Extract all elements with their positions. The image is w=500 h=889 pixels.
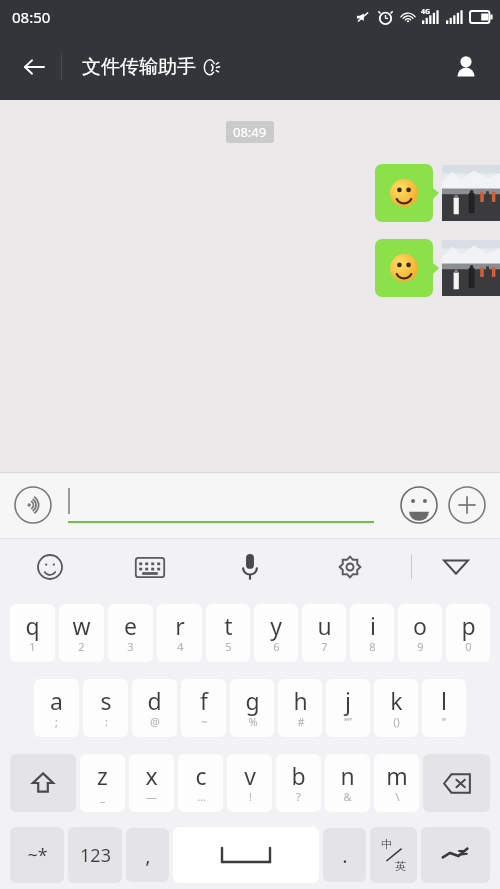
staticText: ? bbox=[296, 789, 301, 804]
button[interactable]: n bbox=[325, 754, 370, 812]
button[interactable] bbox=[68, 482, 388, 528]
button[interactable]: y bbox=[254, 604, 298, 662]
staticText: … bbox=[197, 789, 206, 804]
staticText: e bbox=[124, 610, 137, 641]
staticText: & bbox=[343, 789, 352, 804]
staticText: l bbox=[441, 685, 447, 716]
staticText: 3 bbox=[127, 639, 134, 654]
staticText: ~* bbox=[27, 843, 48, 868]
staticText: o bbox=[413, 610, 427, 641]
button[interactable]: Keyboard settings bbox=[328, 545, 372, 589]
button[interactable]: Enter bbox=[421, 827, 490, 883]
button[interactable]: Switch language bbox=[370, 827, 417, 883]
button[interactable]: w bbox=[59, 604, 104, 662]
staticText: “” bbox=[344, 714, 352, 729]
staticText: 4G bbox=[421, 7, 431, 17]
button[interactable]: l bbox=[422, 679, 466, 737]
button[interactable]: More options bbox=[448, 486, 486, 524]
button[interactable]: x bbox=[129, 754, 174, 812]
button[interactable]: Voice input bbox=[14, 486, 52, 524]
staticText: d bbox=[147, 685, 162, 716]
staticText: _ bbox=[100, 789, 105, 804]
button[interactable]: m bbox=[374, 754, 419, 812]
staticText: () bbox=[393, 714, 400, 729]
staticText: w bbox=[72, 610, 91, 641]
staticText: ~ bbox=[201, 714, 208, 729]
button[interactable]: g bbox=[230, 679, 274, 737]
button[interactable]: , bbox=[126, 828, 169, 882]
staticText: 123 bbox=[80, 843, 111, 868]
button[interactable] bbox=[375, 239, 439, 297]
button[interactable]: o bbox=[398, 604, 442, 662]
button[interactable]: Emoji bbox=[400, 486, 438, 524]
button[interactable] bbox=[442, 165, 500, 221]
staticText: 6 bbox=[273, 639, 280, 654]
staticText: 0 bbox=[465, 639, 472, 654]
button[interactable]: s bbox=[83, 679, 128, 737]
button[interactable]: h bbox=[278, 679, 322, 737]
button[interactable] bbox=[442, 240, 500, 296]
button[interactable]: r bbox=[157, 604, 202, 662]
button[interactable]: e bbox=[108, 604, 153, 662]
staticText: u bbox=[317, 610, 332, 641]
staticText: 08:50 bbox=[12, 7, 51, 27]
staticText: \ bbox=[395, 789, 400, 804]
button[interactable]: ~* bbox=[10, 827, 64, 883]
staticText: 2 bbox=[78, 639, 85, 654]
button[interactable]: a bbox=[34, 679, 79, 737]
staticText: : bbox=[105, 714, 108, 729]
staticText: ‘’ bbox=[442, 714, 446, 729]
staticText: r bbox=[175, 610, 185, 641]
button[interactable]: v bbox=[227, 754, 272, 812]
staticText: b bbox=[291, 760, 306, 791]
staticText: z bbox=[97, 760, 108, 791]
button[interactable]: t bbox=[206, 604, 250, 662]
staticText: 5 bbox=[225, 639, 232, 654]
button[interactable]: q bbox=[10, 604, 55, 662]
button[interactable]: k bbox=[374, 679, 418, 737]
staticText: k bbox=[390, 685, 403, 716]
staticText: p bbox=[461, 610, 476, 641]
button[interactable]: . bbox=[323, 828, 366, 882]
staticText: t bbox=[224, 610, 233, 641]
button[interactable]: Contact profile bbox=[444, 45, 488, 89]
staticText: 08:49 bbox=[233, 123, 267, 141]
button[interactable]: Backspace bbox=[423, 754, 490, 812]
staticText: % bbox=[248, 714, 258, 729]
button[interactable]: Back bbox=[14, 47, 54, 87]
staticText: 9 bbox=[417, 639, 424, 654]
staticText: 文件传输助手 bbox=[82, 55, 196, 79]
button[interactable]: z bbox=[80, 754, 125, 812]
button[interactable]: 123 bbox=[68, 827, 122, 883]
button[interactable]: Hide keyboard bbox=[434, 545, 478, 589]
staticText: n bbox=[340, 760, 355, 791]
button[interactable]: u bbox=[302, 604, 346, 662]
staticText: a bbox=[50, 685, 63, 716]
staticText: i bbox=[370, 610, 376, 641]
button[interactable]: Voice typing bbox=[228, 545, 272, 589]
staticText: — bbox=[146, 789, 157, 804]
button[interactable]: p bbox=[446, 604, 490, 662]
button[interactable]: Space bbox=[173, 827, 319, 883]
button[interactable]: c bbox=[178, 754, 223, 812]
button[interactable]: Shift bbox=[10, 754, 76, 812]
button[interactable]: j bbox=[326, 679, 370, 737]
staticText: ; bbox=[55, 714, 58, 729]
staticText: 1 bbox=[29, 639, 36, 654]
button[interactable]: f bbox=[181, 679, 226, 737]
button[interactable]: Keyboard layout bbox=[128, 545, 172, 589]
staticText: , bbox=[145, 842, 151, 869]
staticText: h bbox=[293, 685, 308, 716]
button[interactable]: b bbox=[276, 754, 321, 812]
button[interactable] bbox=[375, 164, 439, 222]
staticText: 7 bbox=[321, 639, 328, 654]
staticText: x bbox=[145, 760, 158, 791]
staticText: ! bbox=[249, 789, 252, 804]
staticText: y bbox=[270, 610, 282, 641]
button[interactable]: d bbox=[132, 679, 177, 737]
staticText: g bbox=[245, 685, 260, 716]
button[interactable]: i bbox=[350, 604, 394, 662]
staticText: m bbox=[386, 760, 408, 791]
button[interactable]: Emoji keyboard bbox=[28, 545, 72, 589]
staticText: 中 bbox=[381, 837, 392, 851]
